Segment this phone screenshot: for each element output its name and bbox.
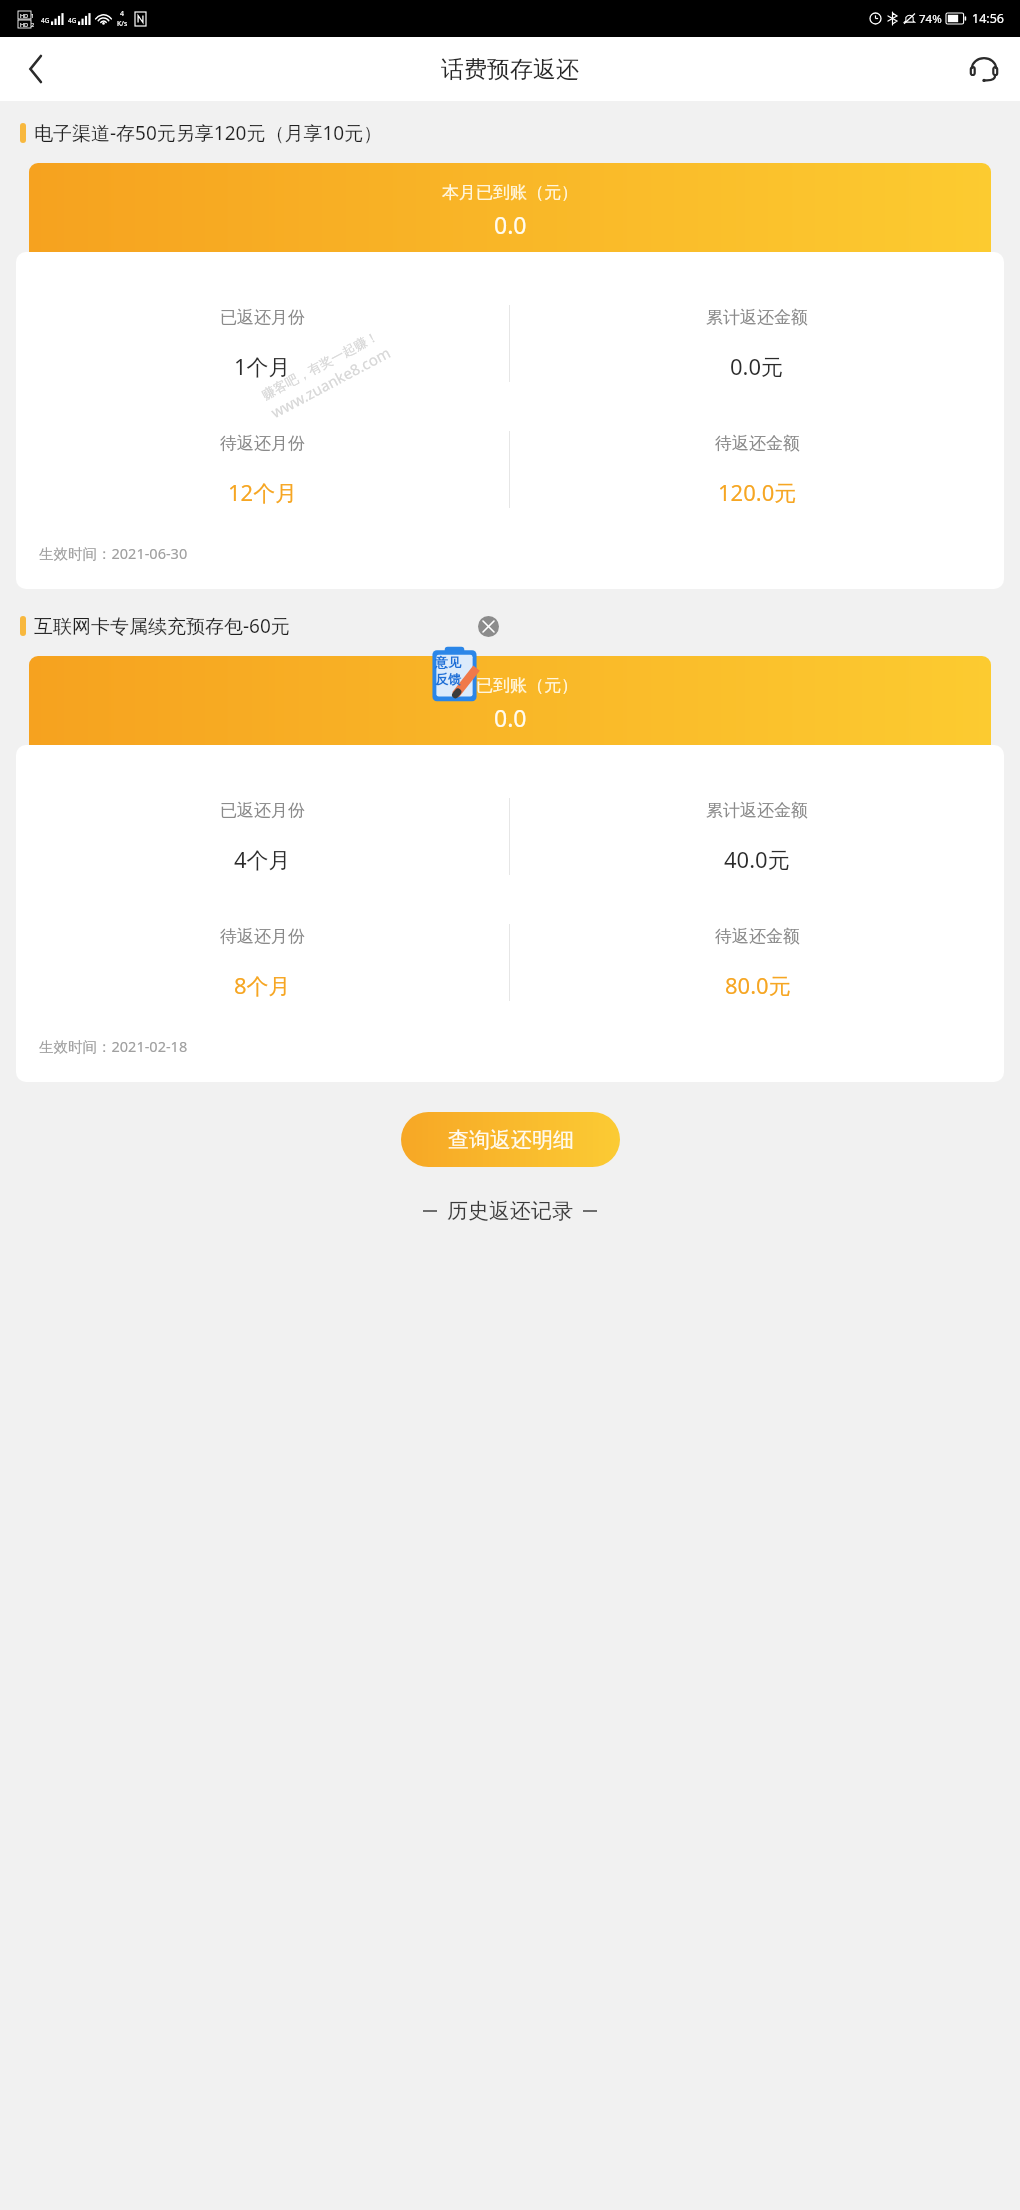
staticText: 12个月 (228, 477, 298, 507)
staticText: 生效时间：2021-06-30 (39, 543, 188, 563)
staticText: 历史返还记录 (447, 1198, 573, 1224)
staticText: 赚客吧，有奖一起赚！ (259, 327, 381, 403)
staticText: 74% (919, 11, 942, 27)
staticText: 1个月 (234, 351, 291, 381)
staticText: 电子渠道-存50元另享120元（月享10元） (34, 120, 383, 146)
button[interactable]: 查询返还明细 (401, 1112, 620, 1167)
button[interactable]: 客服 (948, 37, 1020, 101)
button[interactable]: 关闭 (478, 616, 499, 637)
button[interactable]: 已返还月份 (16, 252, 1004, 589)
staticText: 4G (41, 16, 50, 25)
staticText: 累计返还金额 (706, 800, 808, 821)
staticText: 本月已到账（元） (442, 182, 578, 203)
staticText: 互联网卡专属续充预存包-60元 (34, 613, 290, 639)
staticText: 查询返还明细 (448, 1127, 574, 1153)
staticText: 4 (120, 9, 125, 19)
staticText: HD (20, 21, 29, 28)
staticText: 待返还金额 (715, 926, 800, 947)
staticText: 14:56 (972, 10, 1004, 27)
staticText: www.zuanke8.com (267, 342, 394, 422)
staticText: 120.0元 (718, 477, 797, 507)
staticText: 话费预存返还 (441, 55, 579, 84)
staticText: 2 (31, 21, 35, 28)
staticText: 反馈 (435, 671, 461, 687)
staticText: 已返还月份 (220, 800, 305, 821)
button[interactable]: 历史返还记录 (411, 1190, 609, 1232)
staticText: 8个月 (234, 970, 291, 1000)
staticText: 0.0 (494, 702, 527, 733)
staticText: K/s (117, 19, 128, 29)
staticText: 待返还金额 (715, 433, 800, 454)
staticText: 0.0 (494, 209, 527, 240)
staticText: 80.0元 (725, 970, 791, 1000)
staticText: 40.0元 (724, 844, 790, 874)
staticText: 累计返还金额 (706, 307, 808, 328)
staticText: 0.0元 (730, 351, 784, 381)
staticText: 意见 (435, 654, 461, 670)
staticText: 生效时间：2021-02-18 (39, 1036, 188, 1056)
staticText: 4个月 (234, 844, 291, 874)
button[interactable]: 已返还月份 (16, 745, 1004, 1082)
staticText: 待返还月份 (220, 926, 305, 947)
staticText: HD (20, 12, 29, 19)
button[interactable]: 返回 (0, 37, 72, 101)
staticText: 1 (31, 12, 35, 19)
staticText: 已返还月份 (220, 307, 305, 328)
staticText: 待返还月份 (220, 433, 305, 454)
staticText: 4G (68, 16, 77, 25)
staticText: 本月已到账（元） (442, 675, 578, 696)
button[interactable]: 意见反馈 (430, 645, 479, 703)
